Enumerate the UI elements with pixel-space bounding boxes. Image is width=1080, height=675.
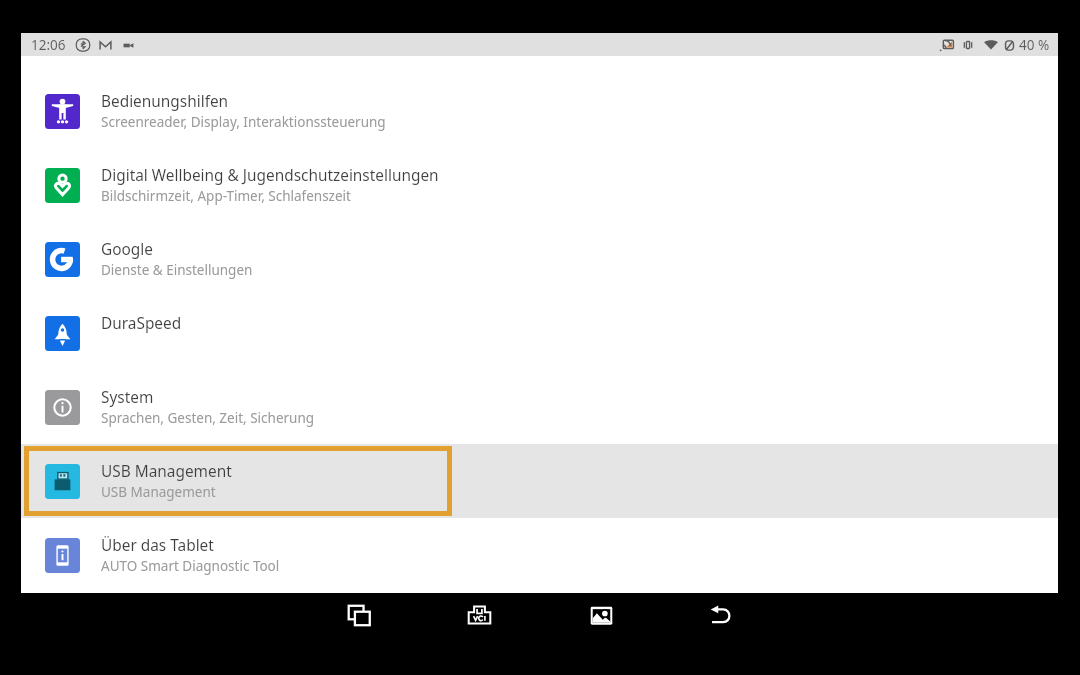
staticText: USB Management xyxy=(101,461,232,482)
button[interactable]: VCI xyxy=(457,593,501,637)
button[interactable]: System xyxy=(21,370,1058,444)
button[interactable]: Screenshot xyxy=(579,593,623,637)
button[interactable]: Back xyxy=(699,593,743,637)
staticText: System xyxy=(101,387,154,408)
staticText: Sprachen, Gesten, Zeit, Sicherung xyxy=(101,409,315,427)
staticText: 40 % xyxy=(1019,36,1050,54)
button[interactable]: DuraSpeed xyxy=(21,296,1058,370)
button[interactable]: Digital Wellbeing & Jugendschutzeinstell… xyxy=(21,148,1058,222)
staticText: Dienste & Einstellungen xyxy=(101,261,253,279)
staticText: Bedienungshilfen xyxy=(101,91,229,112)
staticText: USB Management xyxy=(101,483,216,501)
button[interactable]: Google xyxy=(21,222,1058,296)
button[interactable]: USB Management xyxy=(21,444,1058,518)
button[interactable]: Bedienungshilfen xyxy=(21,74,1058,148)
button[interactable]: Recent apps xyxy=(337,593,381,637)
staticText: Über das Tablet xyxy=(101,535,214,556)
staticText: Bildschirmzeit, App-Timer, Schlafenszeit xyxy=(101,187,351,205)
button[interactable]: Über das Tablet xyxy=(21,518,1058,592)
staticText: DuraSpeed xyxy=(101,313,182,334)
staticText: Screenreader, Display, Interaktionssteue… xyxy=(101,113,386,131)
staticText: AUTO Smart Diagnostic Tool xyxy=(101,557,280,575)
staticText: Google xyxy=(101,239,153,260)
staticText: 12:06 xyxy=(31,36,66,54)
staticText: Digital Wellbeing & Jugendschutzeinstell… xyxy=(101,165,439,186)
